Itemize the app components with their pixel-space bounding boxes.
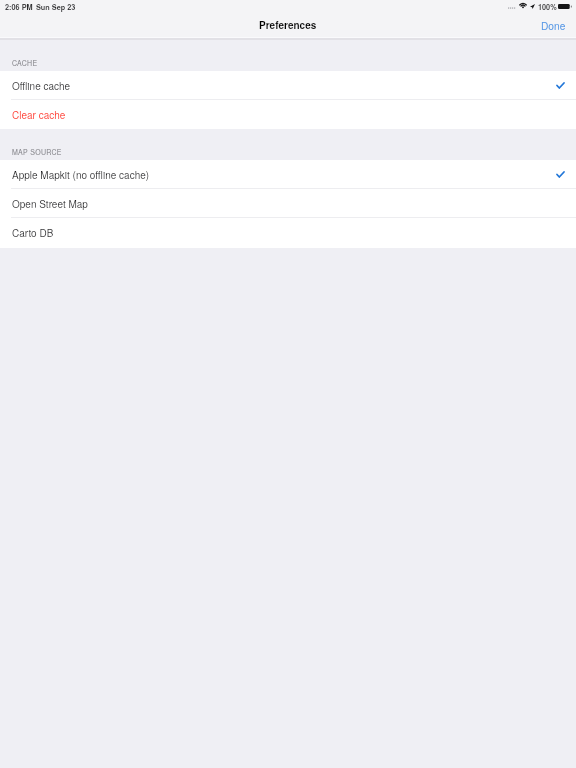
staticText: Clear cache bbox=[12, 108, 66, 122]
staticText: Done bbox=[541, 18, 566, 33]
staticText: Preferences bbox=[259, 18, 317, 32]
staticText: Offline cache bbox=[12, 79, 71, 93]
button[interactable]: Offline cache bbox=[0, 71, 576, 100]
staticText: Open Street Map bbox=[12, 197, 88, 211]
button[interactable]: Apple Mapkit (no offline cache) bbox=[0, 160, 576, 189]
button[interactable]: Carto DB bbox=[0, 218, 576, 248]
staticText: Carto DB bbox=[12, 226, 54, 240]
button[interactable]: Clear cache bbox=[0, 100, 576, 129]
staticText: Apple Mapkit (no offline cache) bbox=[12, 168, 150, 182]
staticText: 100% bbox=[538, 2, 557, 12]
staticText: 2:06 PM bbox=[5, 2, 33, 12]
staticText: CACHE bbox=[12, 58, 38, 68]
other: Selected bbox=[557, 172, 564, 177]
staticText: MAP SOURCE bbox=[12, 147, 62, 157]
other: Selected bbox=[557, 83, 564, 88]
button[interactable]: Open Street Map bbox=[0, 189, 576, 218]
button[interactable]: Done bbox=[531, 15, 576, 36]
staticText: Sun Sep 23 bbox=[36, 2, 76, 12]
